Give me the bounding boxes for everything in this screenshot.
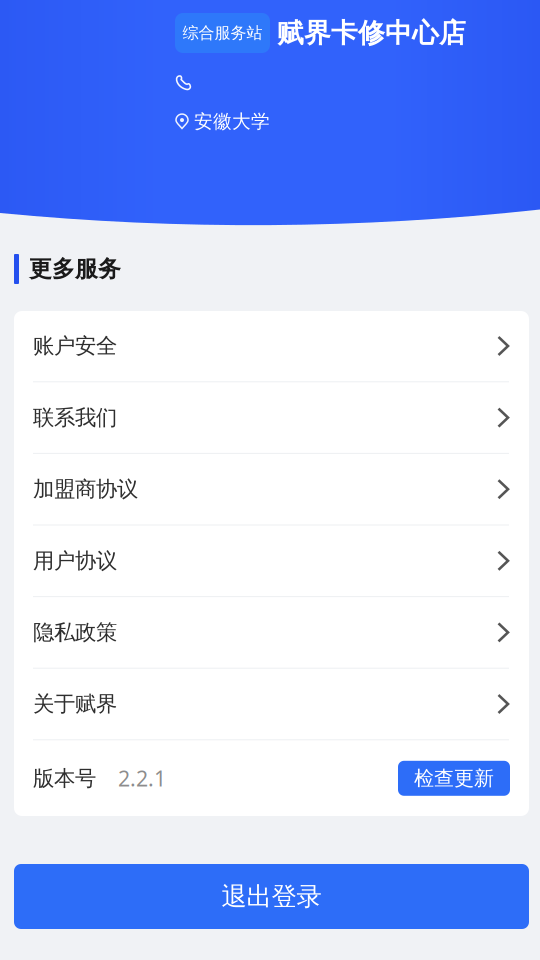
staticText: 版本号	[33, 765, 96, 791]
staticText: 安徽大学	[194, 110, 270, 133]
staticText: 加盟商协议	[33, 476, 138, 502]
staticText: 隐私政策	[33, 619, 117, 645]
staticText: 综合服务站	[182, 23, 262, 43]
button[interactable]: 隐私政策	[14, 597, 529, 668]
button[interactable]: 用户协议	[14, 525, 529, 596]
staticText: 2.2.1	[118, 764, 166, 792]
staticText: 检查更新	[414, 766, 494, 791]
staticText: 联系我们	[33, 404, 117, 431]
button[interactable]: 关于赋界	[14, 669, 529, 739]
staticText: 退出登录	[221, 881, 321, 912]
button[interactable]: 联系我们	[14, 382, 529, 453]
button[interactable]: 检查更新	[398, 761, 510, 796]
button[interactable]: 加盟商协议	[14, 454, 529, 524]
button[interactable]: 退出登录	[14, 864, 529, 929]
staticText: 关于赋界	[33, 691, 117, 717]
button[interactable]: 账户安全	[14, 311, 529, 381]
button[interactable]: 拨打电话	[175, 75, 192, 91]
staticText: 赋界卡修中心店	[277, 17, 466, 49]
staticText: 更多服务	[29, 255, 121, 283]
staticText: 用户协议	[33, 548, 117, 574]
staticText: 账户安全	[33, 333, 117, 359]
